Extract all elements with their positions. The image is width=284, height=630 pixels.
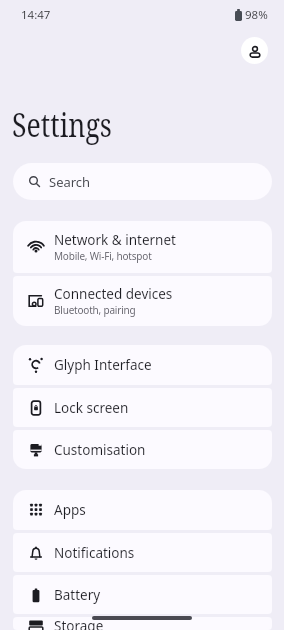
staticText: 14:47: [21, 7, 51, 23]
staticText: Bluetooth, pairing: [54, 303, 136, 317]
staticText: Connected devices: [54, 285, 173, 303]
staticText: Glyph Interface: [54, 356, 152, 374]
staticText: 98%: [245, 7, 268, 23]
staticText: Storage: [54, 617, 104, 630]
button[interactable]: Storage: [13, 617, 272, 630]
button[interactable]: Glyph Interface: [13, 345, 272, 385]
staticText: Settings: [12, 102, 112, 147]
staticText: Lock screen: [54, 399, 129, 417]
staticText: Search: [49, 173, 91, 191]
button[interactable]: Apps: [13, 490, 272, 530]
staticText: Battery: [54, 586, 101, 604]
button[interactable]: Lock screen: [13, 388, 272, 427]
staticText: Mobile, Wi-Fi, hotspot: [54, 249, 152, 263]
button[interactable]: Notifications: [13, 533, 272, 572]
button[interactable]: Customisation: [13, 430, 272, 469]
button[interactable]: Battery: [13, 575, 272, 614]
button[interactable]: [241, 37, 268, 64]
button[interactable]: Network & internet: [13, 221, 272, 273]
button[interactable]: Search: [13, 163, 272, 200]
button[interactable]: Connected devices: [13, 276, 272, 326]
staticText: Apps: [54, 501, 86, 519]
staticText: Customisation: [54, 441, 146, 459]
staticText: Notifications: [54, 544, 135, 562]
staticText: Network & internet: [54, 231, 176, 249]
